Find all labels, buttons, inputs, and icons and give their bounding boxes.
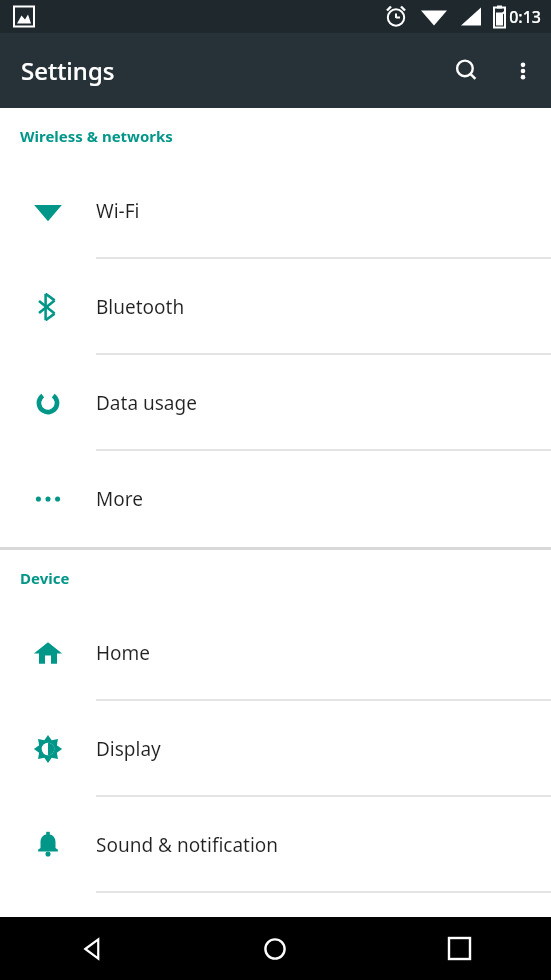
button[interactable]: Search: [439, 43, 495, 99]
button[interactable]: More options: [495, 43, 551, 99]
staticText: Wi-Fi: [96, 198, 140, 224]
staticText: Display: [96, 736, 161, 762]
button[interactable]: Wi-Fi: [0, 163, 551, 259]
button[interactable]: Sound & notification: [0, 797, 551, 893]
button[interactable]: More: [0, 451, 551, 547]
button[interactable]: Recent apps: [367, 917, 551, 980]
staticText: Device: [20, 568, 70, 588]
staticText: More: [96, 486, 143, 512]
staticText: Settings: [21, 54, 115, 87]
button[interactable]: Back: [0, 917, 183, 980]
button[interactable]: Display: [0, 701, 551, 797]
staticText: Sound & notification: [96, 832, 279, 858]
button[interactable]: Home: [183, 917, 367, 980]
staticText: Data usage: [96, 390, 197, 416]
staticText: Wireless & networks: [20, 126, 173, 146]
staticText: Home: [96, 640, 151, 666]
staticText: Bluetooth: [96, 294, 185, 320]
button[interactable]: Data usage: [0, 355, 551, 451]
button[interactable]: Home: [0, 605, 551, 701]
button[interactable]: Bluetooth: [0, 259, 551, 355]
staticText: 10:13: [500, 6, 541, 28]
